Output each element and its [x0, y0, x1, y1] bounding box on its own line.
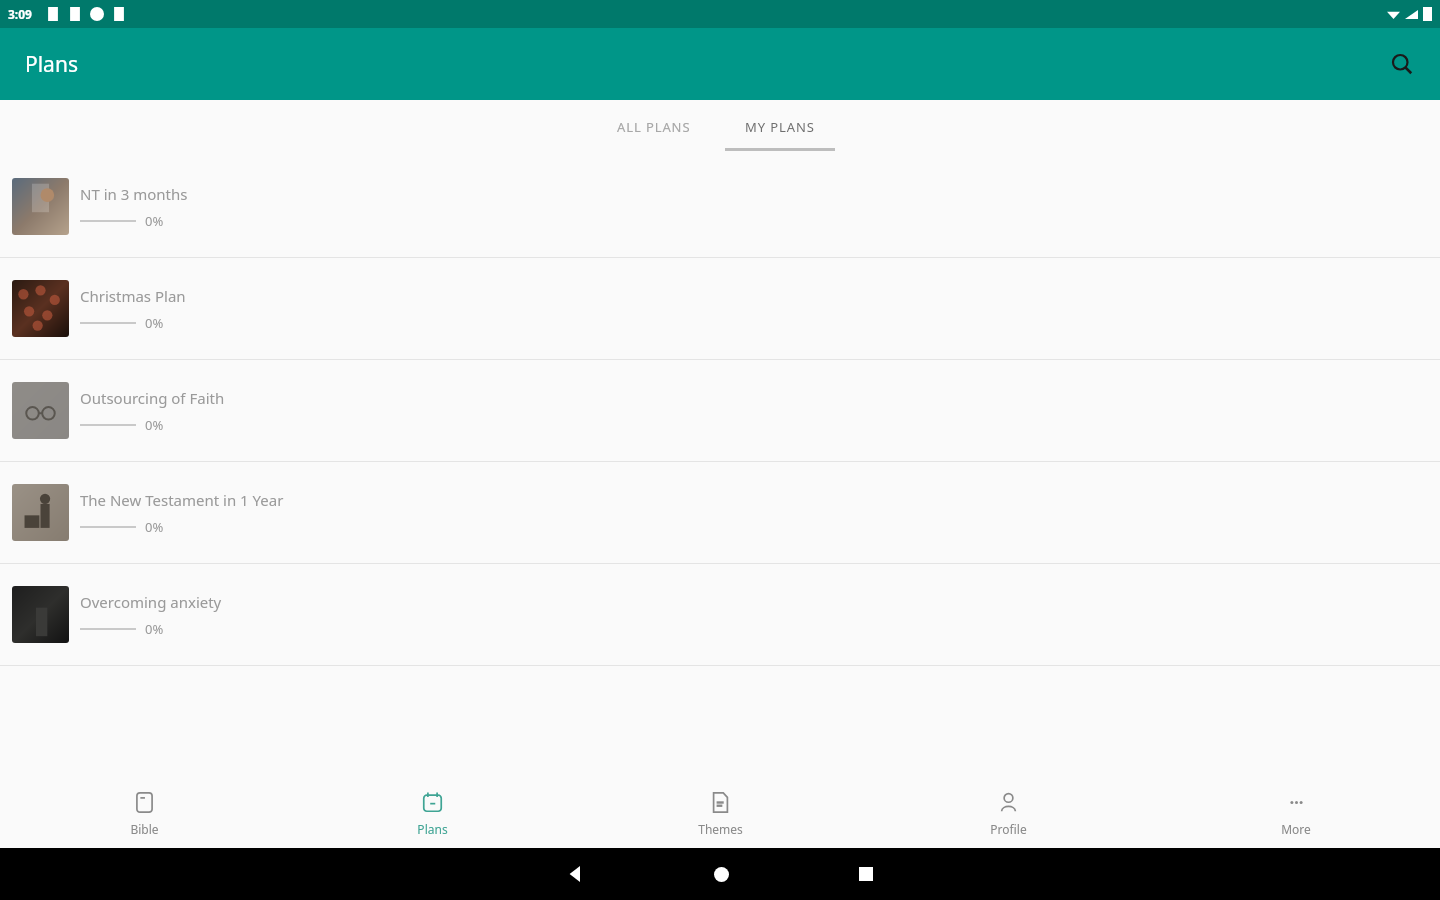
button[interactable]: The New Testament in 1 Year — [0, 462, 1440, 564]
staticText: 0% — [145, 518, 164, 536]
button[interactable]: Themes — [576, 780, 864, 848]
button[interactable]: Overcoming anxiety — [0, 564, 1440, 666]
staticText: The New Testament in 1 Year — [80, 490, 284, 510]
staticText: NT in 3 months — [80, 184, 188, 204]
staticText: Plans — [417, 821, 448, 837]
staticText: Themes — [698, 821, 743, 837]
staticText: Overcoming anxiety — [80, 592, 222, 612]
staticText: More — [1281, 821, 1311, 837]
staticText: MY PLANS — [745, 118, 815, 136]
button[interactable]: NT in 3 months — [0, 156, 1440, 258]
button[interactable]: MY PLANS — [725, 118, 835, 151]
staticText: 0% — [145, 314, 164, 332]
button[interactable]: Plans — [288, 780, 576, 848]
button[interactable]: Profile — [864, 780, 1152, 848]
button[interactable]: More — [1152, 780, 1440, 848]
staticText: Profile — [990, 821, 1027, 837]
button[interactable]: Outsourcing of Faith — [0, 360, 1440, 462]
button[interactable]: Back — [556, 854, 596, 894]
button[interactable]: Christmas Plan — [0, 258, 1440, 360]
button[interactable]: Home — [701, 854, 741, 894]
staticText: 0% — [145, 620, 164, 638]
staticText: Christmas Plan — [80, 286, 186, 306]
staticText: Plans — [25, 50, 78, 79]
button[interactable]: Recents — [846, 854, 886, 894]
button[interactable]: Search — [1378, 40, 1426, 88]
button[interactable]: Bible — [0, 780, 288, 848]
button[interactable]: ALL PLANS — [605, 118, 703, 136]
staticText: 3:09 — [8, 6, 32, 22]
staticText: ALL PLANS — [617, 118, 691, 136]
staticText: 0% — [145, 416, 164, 434]
staticText: Bible — [130, 821, 159, 837]
staticText: Outsourcing of Faith — [80, 388, 225, 408]
staticText: 0% — [145, 212, 164, 230]
